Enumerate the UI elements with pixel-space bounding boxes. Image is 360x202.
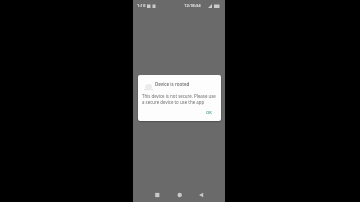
staticText: This device is not secure. Please use bbox=[142, 93, 216, 99]
staticText: Device is rooted bbox=[155, 81, 190, 87]
staticText: OK bbox=[206, 110, 212, 116]
staticText: 12:18:34 bbox=[184, 3, 201, 9]
staticText: a secure device to use the app bbox=[142, 99, 205, 105]
button[interactable]: OK bbox=[201, 107, 217, 119]
button[interactable]: Device is rooted bbox=[138, 75, 221, 121]
staticText: 1:10 bbox=[137, 3, 146, 9]
